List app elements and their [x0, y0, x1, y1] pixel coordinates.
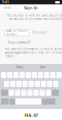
staticText: Cancel — [3, 6, 12, 9]
staticText: Email — [40, 65, 46, 69]
staticText: Email or Phone Number — [6, 29, 27, 36]
staticText: You can sign in with the same account yo… — [7, 14, 62, 17]
staticText: Sign In — [24, 5, 38, 10]
staticText: securely and access your data. See how y… — [5, 51, 62, 58]
staticText: Forgot password? — [7, 41, 30, 44]
staticText: Required — [32, 31, 46, 34]
button[interactable]: Forgot password? — [7, 41, 30, 44]
staticText: 9:41 — [2, 0, 9, 4]
staticText: Your account information is used to allo… — [4, 47, 61, 54]
staticText: FIG. 57 — [24, 112, 37, 118]
staticText: Emails — [16, 65, 23, 69]
button[interactable]: Cancel — [2, 5, 12, 10]
staticText: already use for purchases and subscripti… — [9, 17, 62, 21]
button[interactable]: Email or Phone Number — [4, 29, 29, 36]
